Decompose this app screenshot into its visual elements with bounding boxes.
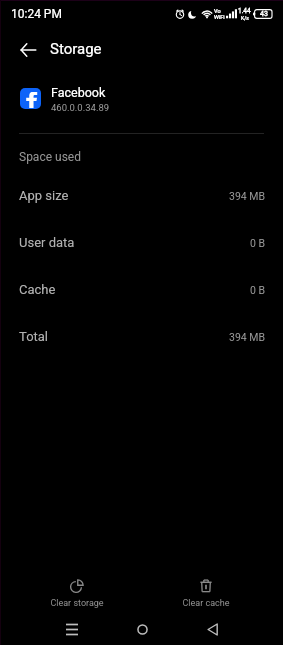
button[interactable]: Back	[12, 33, 44, 65]
staticText: 1.44	[238, 7, 251, 15]
button[interactable]: User data	[0, 219, 283, 266]
button[interactable]: App size	[0, 172, 283, 219]
staticText: K/s	[241, 15, 249, 21]
staticText: 10:24 PM	[11, 7, 62, 21]
staticText: Space used	[19, 150, 81, 164]
staticText: 0 B	[250, 284, 266, 296]
button[interactable]: Back	[177, 616, 247, 642]
button[interactable]: Total	[0, 313, 283, 360]
staticText: Clear storage	[50, 598, 104, 609]
staticText: Storage	[50, 40, 102, 58]
staticText: Total	[19, 329, 49, 344]
staticText: Clear cache	[182, 598, 230, 609]
button[interactable]: Facebook	[0, 71, 283, 133]
staticText: App size	[19, 188, 69, 203]
button[interactable]: Cache	[0, 266, 283, 313]
staticText: 460.0.0.34.89	[51, 102, 110, 113]
staticText: Vo	[214, 8, 221, 14]
staticText: Cache	[19, 282, 56, 297]
button[interactable]: Home	[107, 616, 177, 642]
staticText: 394 MB	[229, 331, 266, 343]
staticText: 43	[260, 10, 268, 18]
staticText: WiFi	[214, 14, 225, 20]
staticText: User data	[19, 235, 75, 250]
staticText: 0 B	[250, 237, 266, 249]
button[interactable]: Clear cache	[141, 572, 271, 616]
button[interactable]: Clear storage	[12, 572, 141, 616]
staticText: Facebook	[51, 85, 106, 100]
button[interactable]: Recents	[36, 616, 107, 642]
staticText: 394 MB	[229, 190, 266, 202]
